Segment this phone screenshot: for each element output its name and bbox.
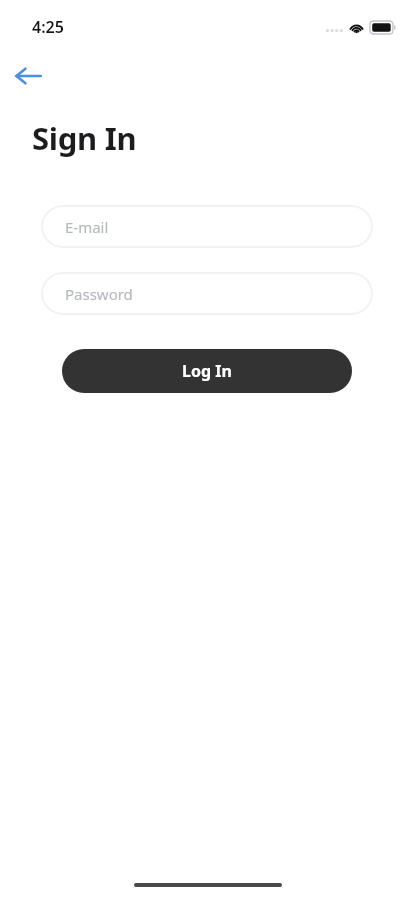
button[interactable]: Log In xyxy=(62,349,352,393)
button[interactable]: E-mail xyxy=(41,205,373,248)
staticText: Log In xyxy=(182,360,232,382)
staticText: E-mail xyxy=(65,217,109,237)
staticText: Sign In xyxy=(32,117,137,159)
button[interactable]: Password xyxy=(41,272,373,315)
staticText: 4:25 xyxy=(32,16,64,38)
button[interactable]: Back xyxy=(6,54,50,98)
staticText: Password xyxy=(65,284,133,304)
